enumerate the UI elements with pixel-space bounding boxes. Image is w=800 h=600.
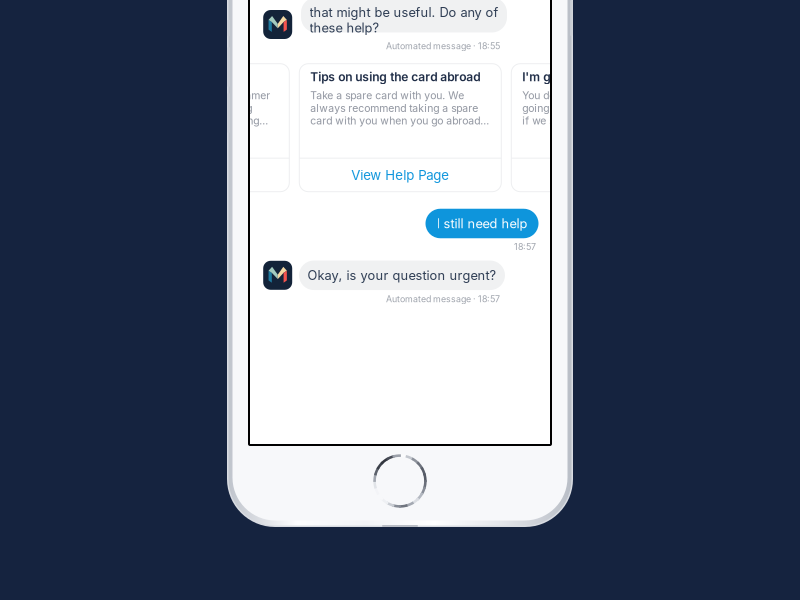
staticText: View Help Page bbox=[351, 167, 449, 183]
button[interactable]: I still need help bbox=[425, 209, 538, 238]
staticText: Automated message · 18:55 bbox=[386, 41, 500, 51]
staticText: I'm going abroad bbox=[522, 70, 619, 84]
button[interactable]: View Help Page bbox=[511, 159, 713, 192]
staticText: Tips on using the card abroad bbox=[310, 70, 480, 84]
button[interactable]: View Help Page bbox=[87, 159, 289, 192]
button[interactable]: View Help Page bbox=[299, 159, 501, 192]
staticText: 18:57 bbox=[514, 241, 536, 252]
staticText: Okay, is your question urgent? bbox=[307, 268, 496, 283]
staticText: Take a spare card with you. We always re… bbox=[310, 89, 489, 127]
staticText: You don't need to tell us you're going a… bbox=[522, 89, 672, 127]
staticText: Automated message · 18:57 bbox=[386, 294, 500, 304]
staticText: View Help Page bbox=[563, 167, 661, 183]
staticText: View Help Page bbox=[139, 167, 237, 183]
staticText: I still need help bbox=[436, 216, 527, 231]
staticText: aliquam lorem ipsum dolor sit amer lorem… bbox=[98, 89, 270, 127]
staticText: that might be useful. Do any of these he… bbox=[309, 4, 498, 35]
